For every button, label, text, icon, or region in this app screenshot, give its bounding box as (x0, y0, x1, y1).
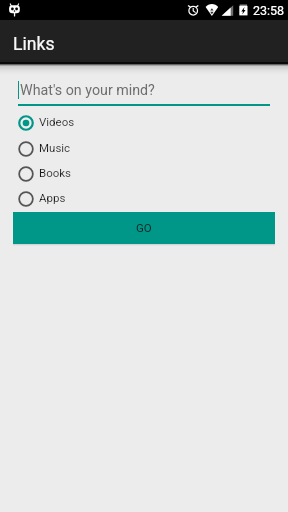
button[interactable]: Videos (0, 110, 288, 135)
staticText: What's on your mind? (20, 82, 155, 99)
staticText: Apps (39, 191, 66, 204)
staticText: GO (136, 221, 152, 234)
button[interactable]: GO (13, 212, 275, 244)
button[interactable]: Music (0, 136, 288, 161)
staticText: Music (39, 141, 71, 154)
button[interactable]: Books (0, 161, 288, 186)
button[interactable]: What's on your mind? text field (14, 72, 274, 108)
staticText: Links (13, 34, 55, 55)
button[interactable]: Apps (0, 186, 288, 211)
staticText: Books (39, 166, 72, 179)
staticText: 23:58 (253, 3, 285, 18)
staticText: Videos (39, 115, 75, 128)
